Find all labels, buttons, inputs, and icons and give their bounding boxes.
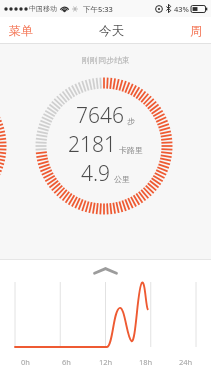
button[interactable]: 菜单 [0, 18, 42, 43]
staticText: 18h [139, 357, 153, 367]
staticText: 刚刚同步结束 [82, 55, 130, 65]
staticText: 下午5:33 [83, 4, 113, 14]
staticText: 0h [21, 357, 30, 367]
staticText: 2181 [68, 130, 116, 159]
staticText: 4.9 [81, 159, 111, 188]
staticText: 步 [127, 116, 135, 126]
staticText: 6h [62, 357, 71, 367]
staticText: 43% [174, 4, 189, 14]
button[interactable]: Hourly activity chart [0, 260, 211, 375]
staticText: 公里 [114, 174, 130, 184]
button[interactable]: Daily activity ring [0, 44, 211, 259]
staticText: 中国移动 [29, 4, 57, 13]
staticText: 卡路里 [119, 145, 143, 155]
button[interactable]: 周 [181, 18, 211, 43]
staticText: 菜单 [9, 23, 33, 38]
staticText: 周 [190, 23, 202, 38]
staticText: 今天 [99, 23, 124, 39]
staticText: 12h [99, 357, 113, 367]
staticText: 24h [179, 357, 193, 367]
staticText: 7646 [76, 101, 124, 130]
